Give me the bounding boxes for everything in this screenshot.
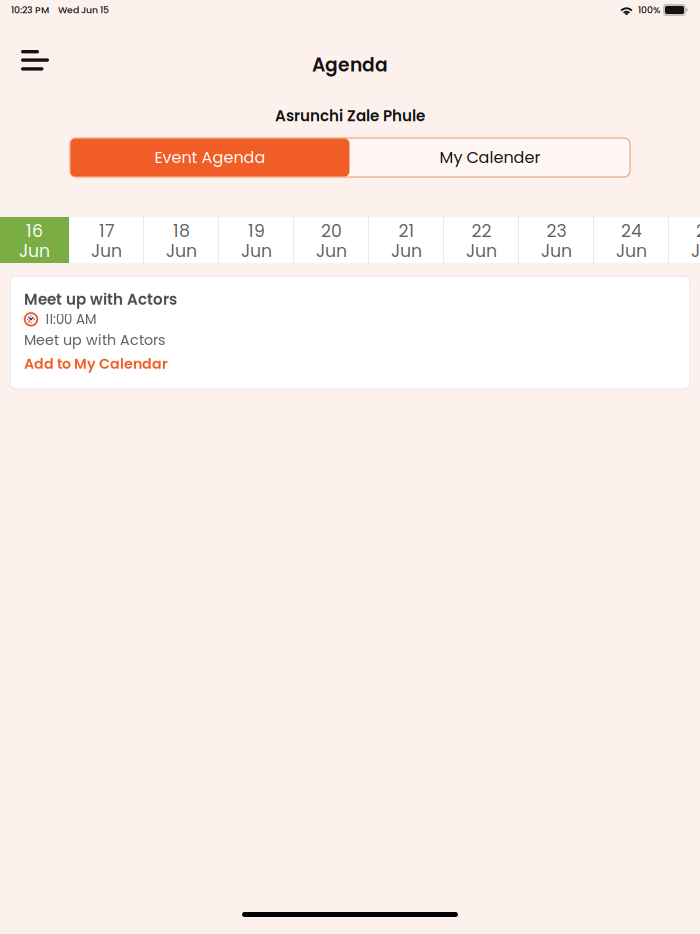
staticText: My Calender <box>439 146 540 169</box>
button[interactable]: 18 <box>144 217 219 263</box>
button[interactable]: 22 <box>444 217 519 263</box>
button[interactable]: Open menu <box>0 36 67 85</box>
staticText: 100% <box>638 3 660 17</box>
staticText: Jun <box>466 239 497 263</box>
staticText: 19 <box>248 219 265 243</box>
button[interactable]: 19 <box>219 217 294 263</box>
staticText: Jun <box>166 239 197 263</box>
button[interactable]: Event Agenda <box>70 138 349 176</box>
button[interactable]: 17 <box>69 217 144 263</box>
button[interactable]: My Calender <box>350 138 629 176</box>
button[interactable]: Add to My Calendar <box>22 354 170 374</box>
staticText: Event Agenda <box>154 146 265 169</box>
button[interactable]: 21 <box>369 217 444 263</box>
staticText: Jun <box>616 239 647 263</box>
staticText: Meet up with Actors <box>24 330 165 350</box>
staticText: Jun <box>391 239 422 263</box>
staticText: Add to My Calendar <box>24 354 168 374</box>
staticText: Wed Jun 15 <box>58 3 109 17</box>
button[interactable]: 24 <box>594 217 669 263</box>
staticText: Asrunchi Zale Phule <box>275 105 425 127</box>
staticText: Jun <box>91 239 122 263</box>
staticText: 24 <box>621 219 642 243</box>
button[interactable]: 23 <box>519 217 594 263</box>
staticText: 17 <box>99 219 114 243</box>
staticText: 20 <box>321 219 342 243</box>
staticText: 25 <box>696 219 700 243</box>
staticText: Jun <box>19 239 50 263</box>
staticText: Jun <box>541 239 572 263</box>
staticText: Jun <box>241 239 272 263</box>
staticText: Jun <box>316 239 347 263</box>
staticText: 23 <box>546 219 566 243</box>
staticText: 10:23 PM <box>11 3 49 17</box>
staticText: 21 <box>398 219 414 243</box>
staticText: 18 <box>173 219 190 243</box>
button[interactable]: 20 <box>294 217 369 263</box>
staticText: 16 <box>26 219 43 243</box>
staticText: 11:00 AM <box>45 310 96 329</box>
button[interactable]: 25 <box>669 217 700 263</box>
staticText: Jun <box>691 239 700 263</box>
button[interactable]: 16 <box>0 217 69 263</box>
staticText: Meet up with Actors <box>24 289 177 310</box>
staticText: 22 <box>471 219 491 243</box>
staticText: Agenda <box>312 52 388 78</box>
